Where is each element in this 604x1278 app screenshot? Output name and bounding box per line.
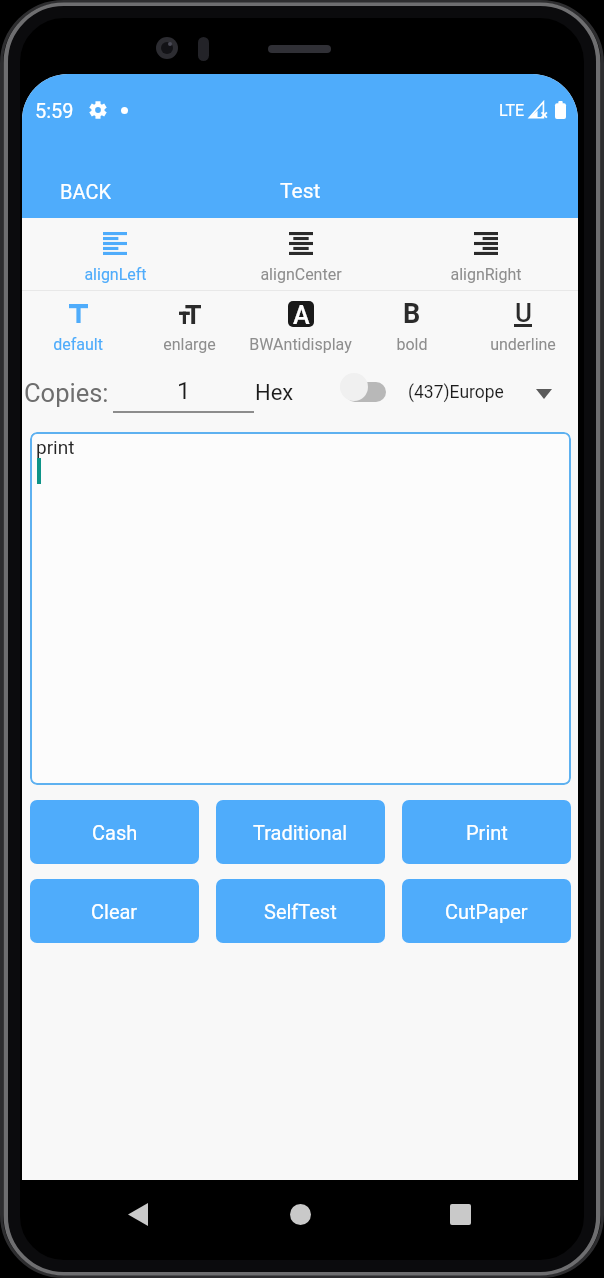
staticText: default <box>53 335 103 354</box>
button[interactable]: Home <box>275 1189 325 1239</box>
staticText: Clear <box>91 900 138 923</box>
button[interactable]: 1 <box>113 372 254 410</box>
button[interactable]: Back <box>113 1189 163 1239</box>
button[interactable]: Hex mode toggle <box>332 370 418 415</box>
button[interactable]: alignLeft <box>22 220 208 290</box>
staticText: Cash <box>92 821 138 844</box>
button[interactable]: Print <box>402 800 571 864</box>
staticText: Traditional <box>253 821 348 844</box>
staticText: underline <box>490 335 556 354</box>
staticText: alignRight <box>450 265 522 284</box>
staticText: Print <box>466 821 508 844</box>
button[interactable]: alignCenter <box>208 220 393 290</box>
button[interactable]: CutPaper <box>402 879 571 943</box>
button[interactable]: SelfTest <box>216 879 385 943</box>
staticText: B <box>403 298 421 330</box>
button[interactable]: Traditional <box>216 800 385 864</box>
staticText: SelfTest <box>264 900 337 923</box>
staticText: A <box>293 301 310 327</box>
staticText: (437)Europe <box>408 382 504 403</box>
button[interactable]: print <box>30 432 571 785</box>
button[interactable]: BACK <box>22 170 135 213</box>
button[interactable]: A <box>245 291 356 363</box>
staticText: Copies: <box>24 378 109 408</box>
staticText: U <box>515 298 532 328</box>
button[interactable]: Clear <box>30 879 199 943</box>
staticText: BWAntidisplay <box>249 335 352 354</box>
button[interactable]: U <box>467 291 578 363</box>
staticText: enlarge <box>163 335 216 354</box>
staticText: LTE <box>499 101 525 120</box>
staticText: alignLeft <box>84 265 147 284</box>
staticText: BACK <box>60 180 111 203</box>
staticText: print <box>36 436 75 458</box>
staticText: 1 <box>177 377 191 405</box>
staticText: Test <box>280 179 321 204</box>
button[interactable]: Choose code page <box>522 372 566 416</box>
staticText: CutPaper <box>445 900 528 923</box>
button[interactable]: Cash <box>30 800 199 864</box>
button[interactable]: alignRight <box>393 220 578 290</box>
button[interactable]: enlarge <box>134 291 245 363</box>
button[interactable]: default <box>22 291 134 363</box>
staticText: alignCenter <box>260 265 342 284</box>
staticText: bold <box>396 335 428 354</box>
staticText: 5:59 <box>35 99 74 122</box>
button[interactable]: Recent apps <box>435 1189 485 1239</box>
staticText: Hex <box>255 380 294 406</box>
button[interactable]: B <box>356 291 467 363</box>
